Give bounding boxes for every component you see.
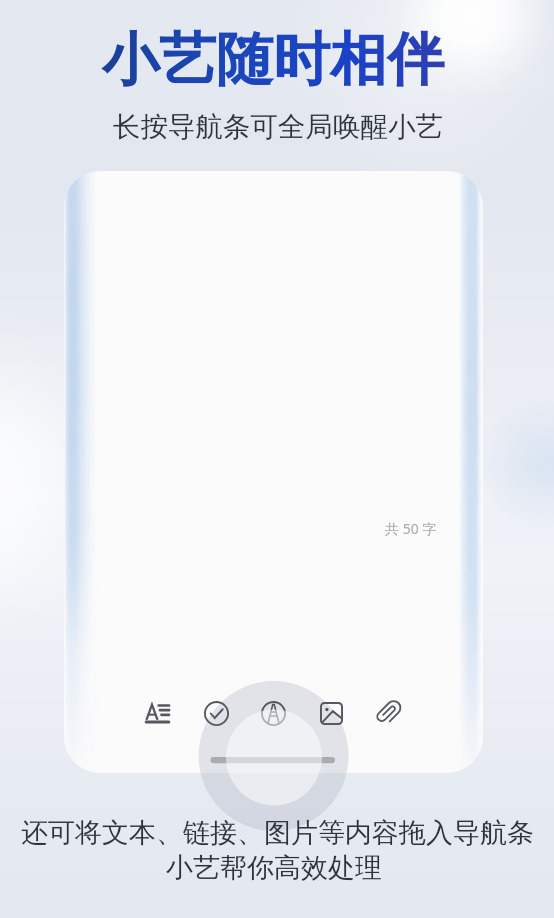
- staticText: 小艺帮你高效处理: [166, 851, 382, 885]
- button[interactable]: Text format: [136, 692, 178, 734]
- staticText: 共 50 字: [385, 519, 437, 538]
- button[interactable]: Todo: [195, 692, 237, 734]
- button[interactable]: Celia assistant: [252, 692, 294, 734]
- staticText: 长按导航条可全局唤醒小艺: [113, 110, 443, 145]
- button[interactable]: Insert image: [310, 692, 352, 734]
- button[interactable]: Attach file: [368, 692, 410, 734]
- staticText: 小艺随时相伴: [102, 24, 444, 96]
- staticText: 还可将文本、链接、图片等内容拖入导航条: [21, 816, 534, 850]
